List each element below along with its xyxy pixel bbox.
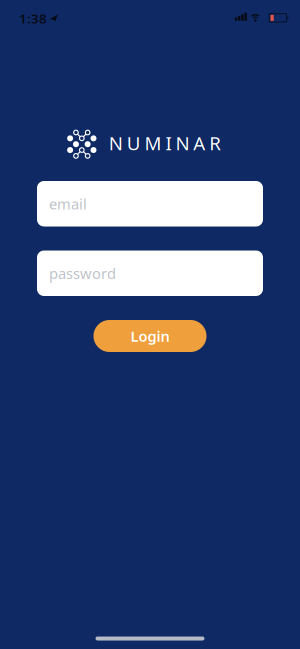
staticText: R xyxy=(209,131,221,155)
staticText: N xyxy=(175,131,189,155)
staticText: email xyxy=(49,194,87,213)
staticText: M xyxy=(145,131,162,155)
staticText: 1:38 xyxy=(19,9,47,27)
button[interactable]: Login xyxy=(93,320,206,352)
staticText: I xyxy=(165,131,171,155)
staticText: N xyxy=(109,131,123,155)
button[interactable]: email xyxy=(37,181,263,226)
staticText: password xyxy=(49,263,116,283)
button[interactable]: password xyxy=(37,250,263,296)
staticText: Login xyxy=(130,326,169,346)
staticText: U xyxy=(127,131,141,155)
staticText: A xyxy=(193,131,205,155)
